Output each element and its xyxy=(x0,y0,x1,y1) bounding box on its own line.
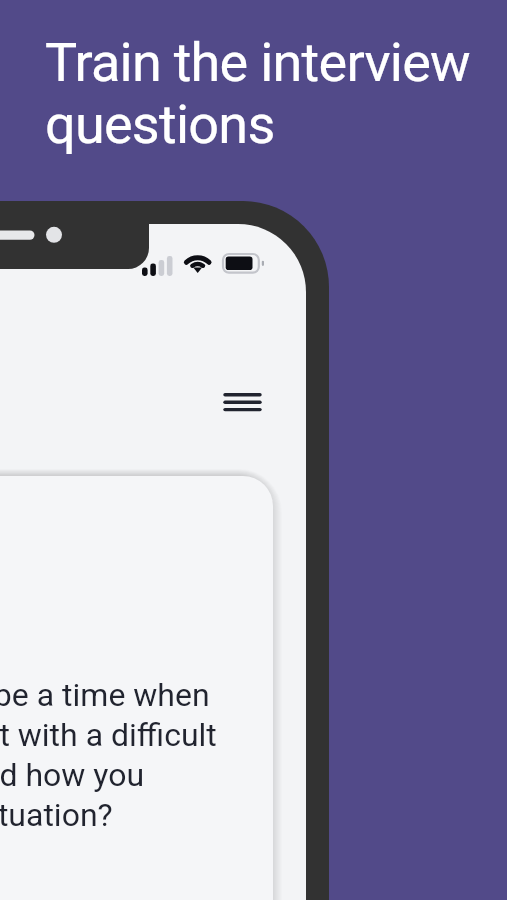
button[interactable]: Describe a time when conflict with a dif… xyxy=(0,476,273,900)
button[interactable]: Open navigation menu xyxy=(213,381,272,423)
staticText: Describe a time when conflict with a dif… xyxy=(0,676,217,833)
staticText: Train the interview questions xyxy=(45,31,470,156)
